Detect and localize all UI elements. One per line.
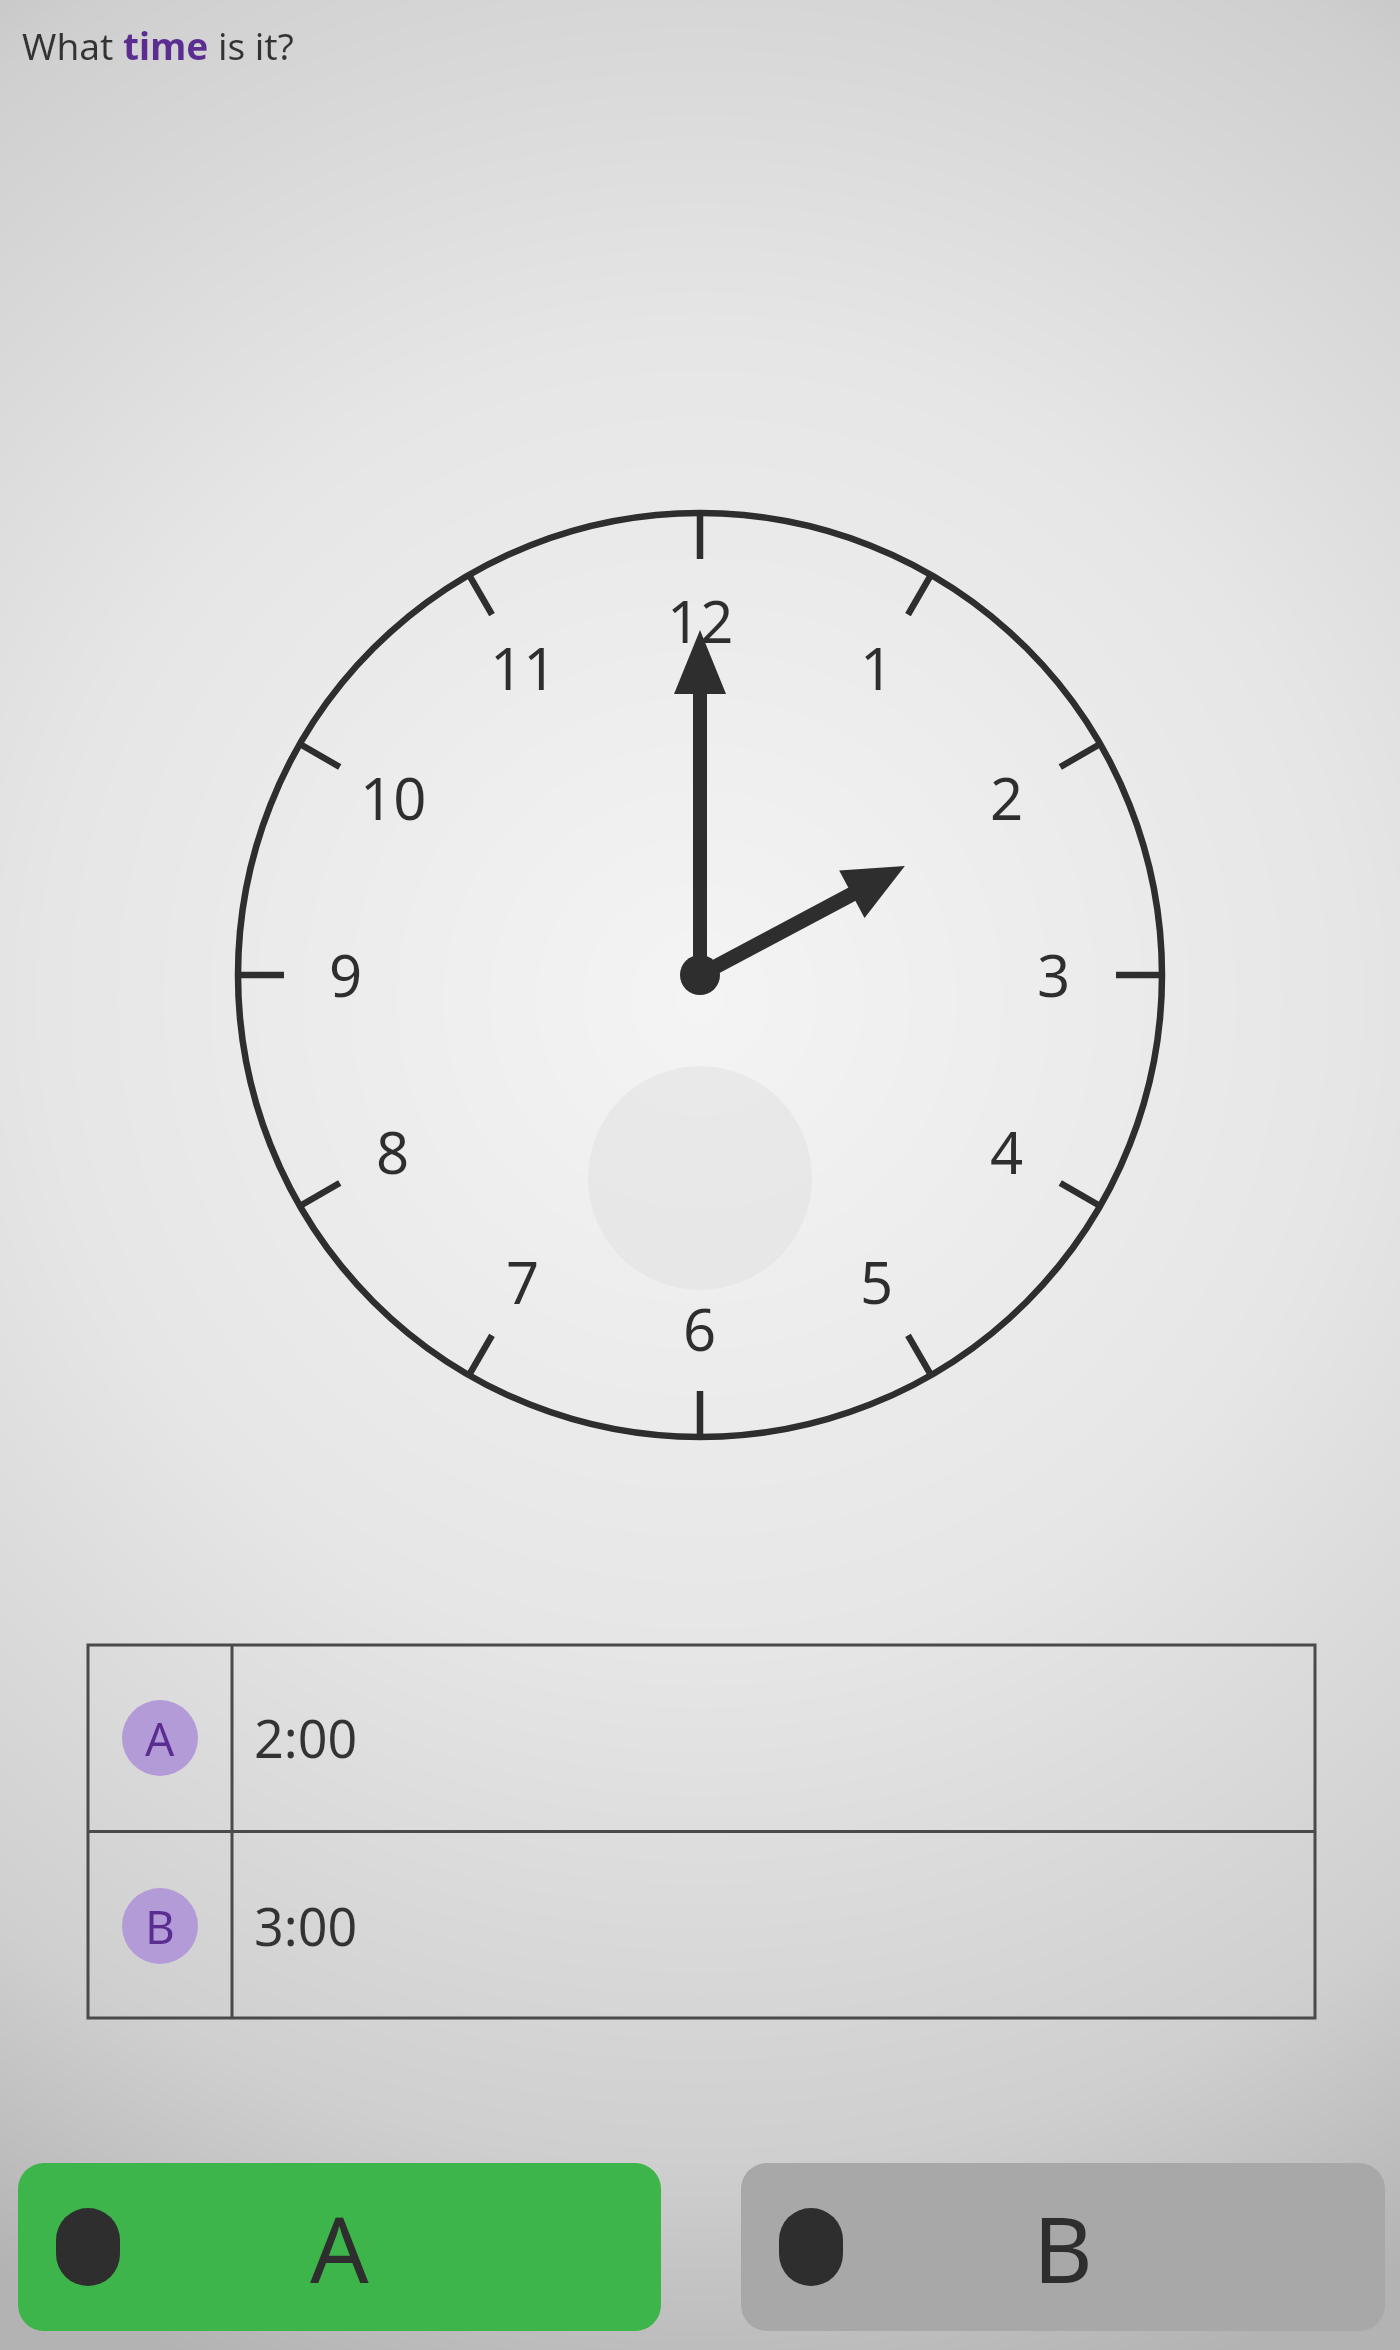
staticText: A [310,2185,369,2310]
staticText: A [145,1707,175,1770]
staticText: 1 [860,628,894,707]
button[interactable]: Answer A [18,2163,661,2331]
staticText: 3:00 [254,1890,358,1961]
button[interactable]: Answer B [741,2163,1385,2331]
staticText: 7 [506,1242,540,1321]
staticText: 2:00 [254,1702,358,1773]
staticText: What time is it? [22,20,294,70]
button[interactable]: A [88,1645,1315,1830]
staticText: 6 [683,1289,717,1368]
staticText: 12 [667,581,734,660]
staticText: 10 [360,758,427,837]
staticText: B [1033,2185,1093,2310]
staticText: 2 [990,758,1024,837]
staticText: 11 [490,628,557,707]
staticText: 9 [329,935,363,1014]
staticText: 4 [990,1112,1024,1191]
staticText: 3 [1037,935,1071,1014]
button[interactable]: B [88,1833,1315,2018]
staticText: B [145,1895,175,1958]
staticText: 5 [860,1242,894,1321]
staticText: 8 [376,1112,410,1191]
